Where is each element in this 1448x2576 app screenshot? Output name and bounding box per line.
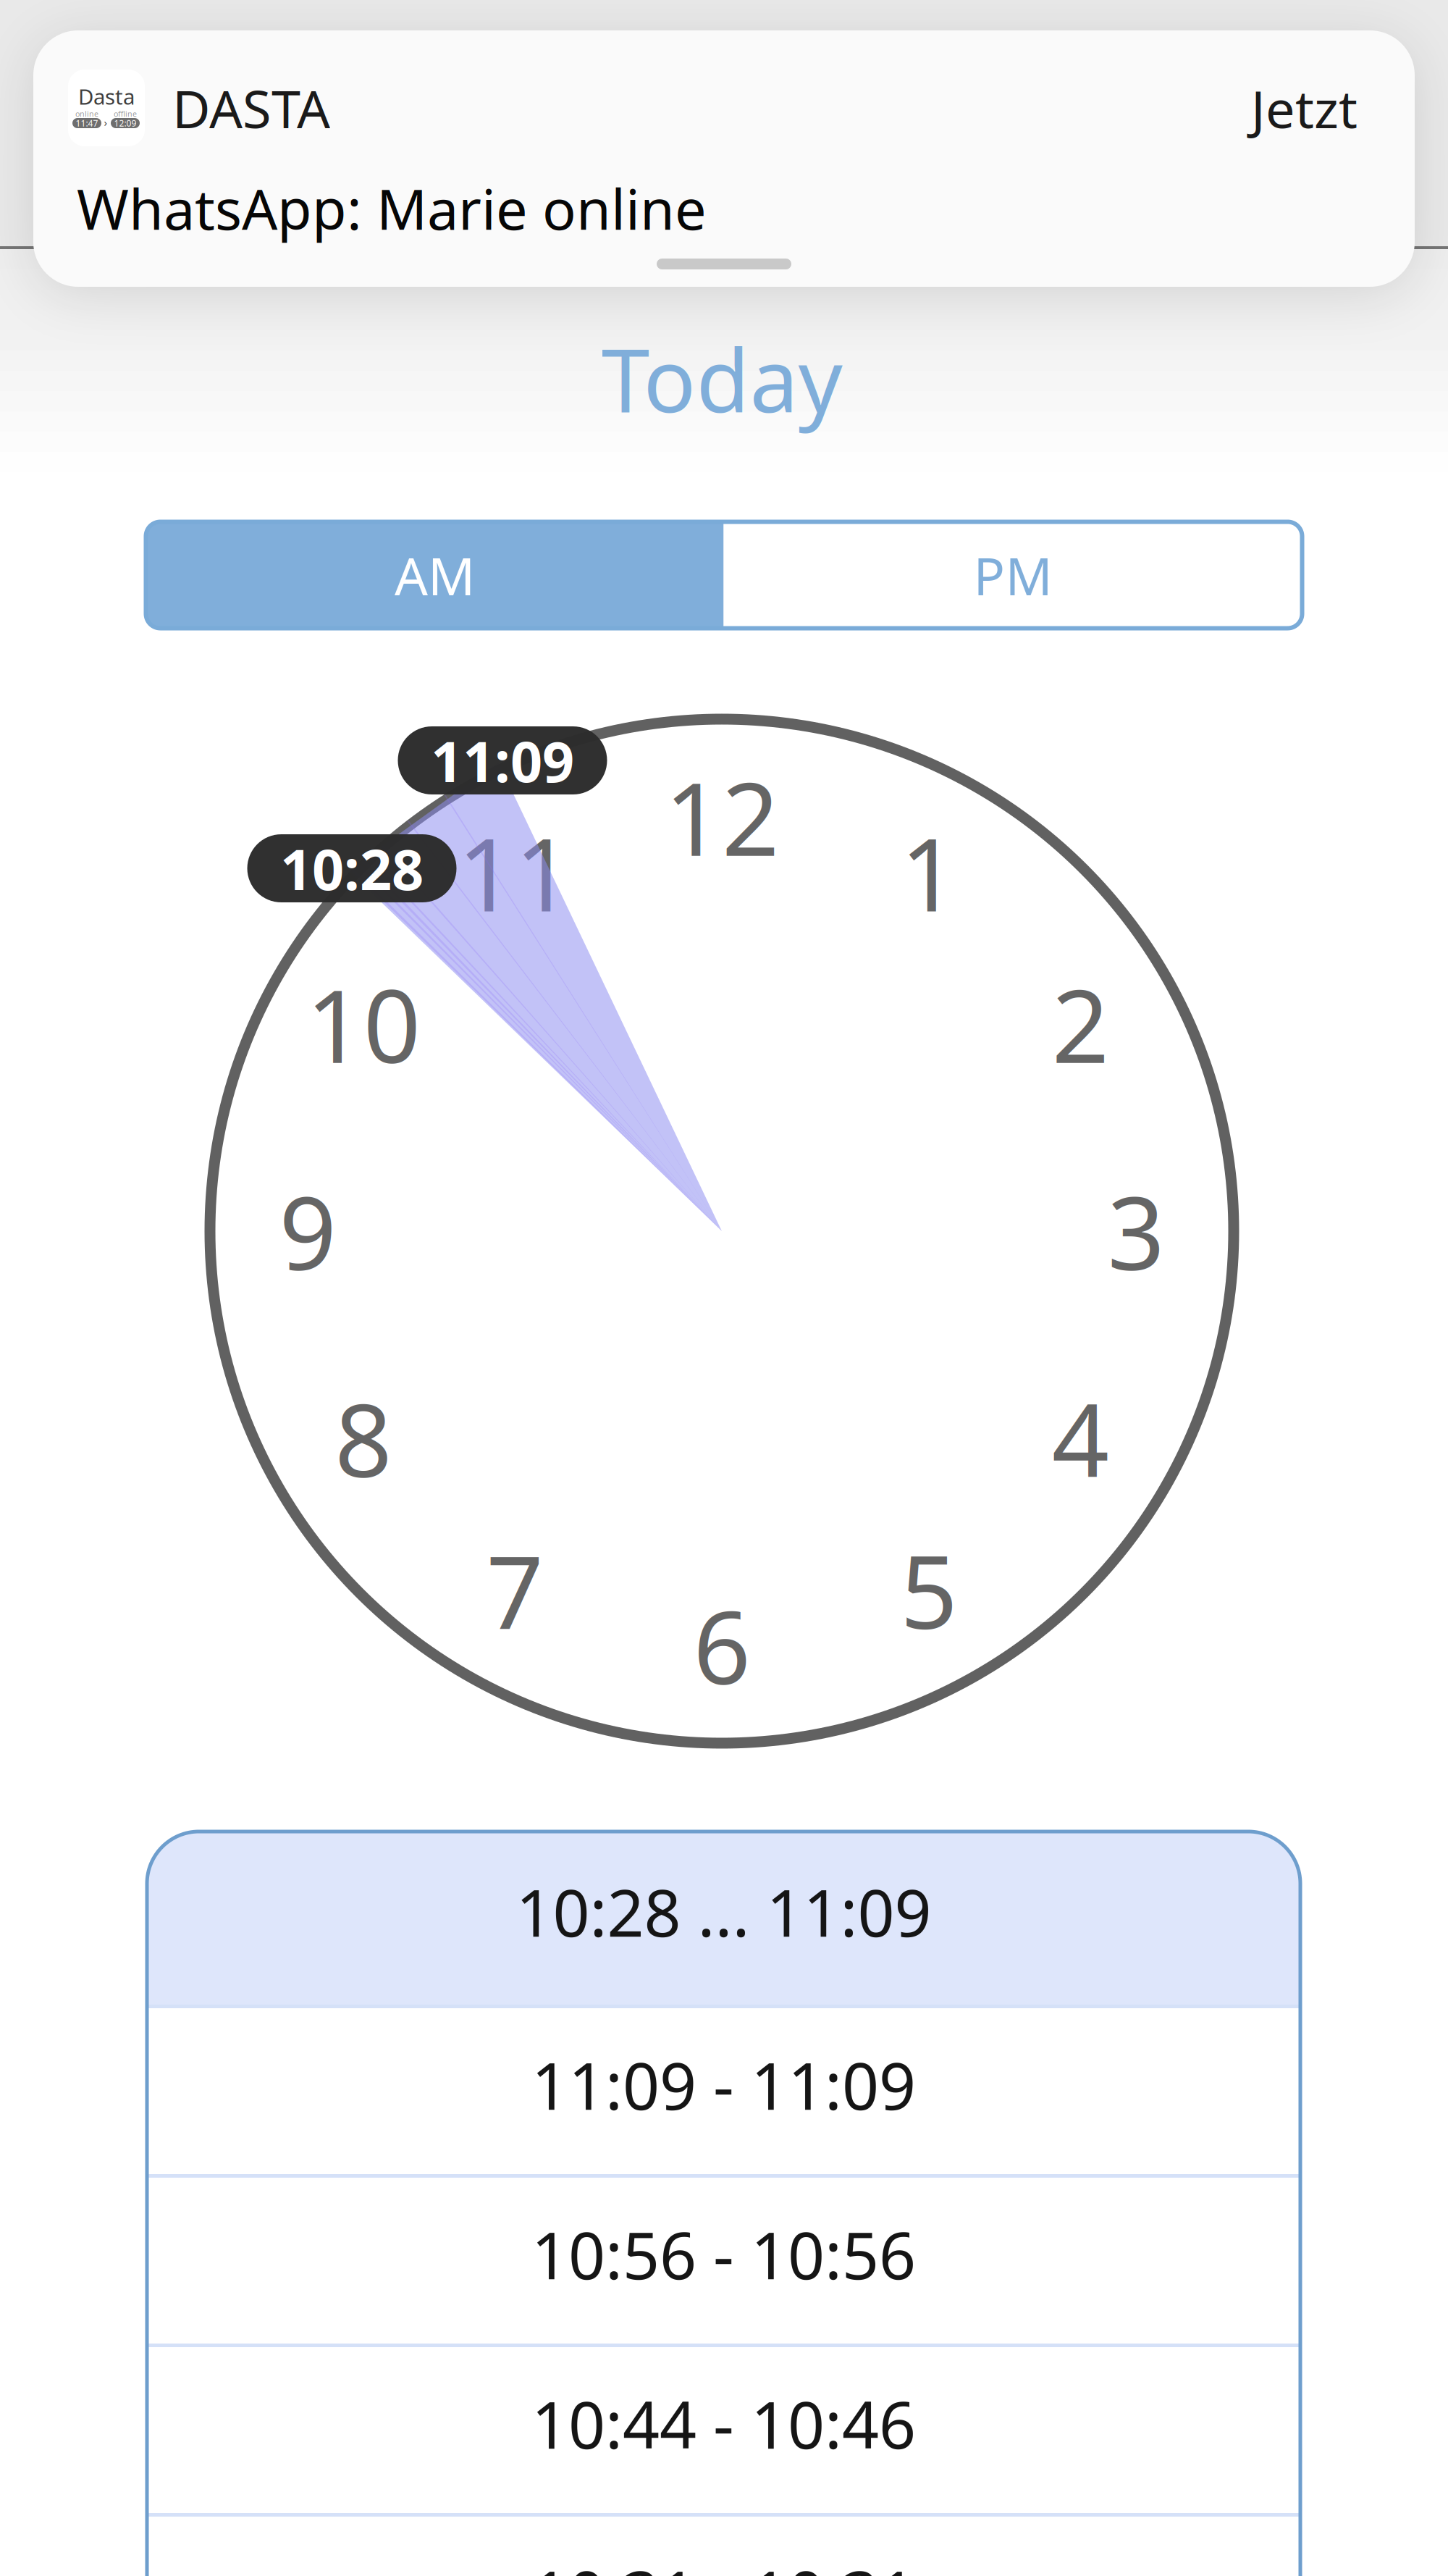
staticText: 3 [1107, 1164, 1165, 1298]
button[interactable]: 10:31 - 10:31 [147, 2517, 1300, 2576]
staticText: 5 [900, 1523, 957, 1657]
staticText: 8 [335, 1372, 392, 1505]
staticText: 9 [279, 1164, 336, 1298]
staticText: 6 [693, 1579, 750, 1712]
staticText: 12:09 [114, 117, 136, 129]
staticText: 10:44 - 10:46 [531, 2381, 916, 2467]
button[interactable]: 11:09 - 11:09 [147, 2008, 1300, 2174]
staticText: 10:28 [280, 831, 424, 906]
staticText: DASTA [172, 73, 330, 143]
staticText: 2 [1052, 957, 1109, 1091]
button[interactable]: 10:28 ... 11:09 [147, 1832, 1300, 2005]
button[interactable]: AM [146, 522, 724, 628]
staticText: 11:47 [76, 117, 98, 129]
staticText: 10:56 - 10:56 [531, 2211, 916, 2297]
staticText: Today [601, 321, 842, 436]
staticText: online [75, 109, 98, 119]
button[interactable]: PM [724, 522, 1302, 628]
staticText: 10:28 ... 11:09 [516, 1869, 931, 1954]
button[interactable]: Dasta [33, 30, 1415, 287]
staticText: WhatsApp: Marie online [77, 171, 707, 245]
staticText: 10:31 - 10:31 [531, 2550, 916, 2576]
staticText: 4 [1052, 1372, 1109, 1505]
staticText: Dasta [78, 82, 135, 110]
staticText: 7 [486, 1523, 543, 1657]
staticText: › [104, 115, 108, 129]
staticText: AM [395, 540, 475, 610]
staticText: 11:09 - 11:09 [531, 2042, 916, 2128]
staticText: 11 [458, 806, 572, 939]
staticText: 12 [665, 750, 779, 884]
button[interactable]: 10:44 - 10:46 [147, 2347, 1300, 2513]
staticText: Jetzt [1251, 73, 1357, 143]
staticText: 1 [900, 806, 957, 939]
staticText: offline [114, 109, 137, 119]
staticText: PM [973, 540, 1052, 610]
staticText: 10 [306, 957, 420, 1091]
button[interactable]: 10:56 - 10:56 [147, 2178, 1300, 2344]
staticText: 11:09 [431, 723, 574, 798]
